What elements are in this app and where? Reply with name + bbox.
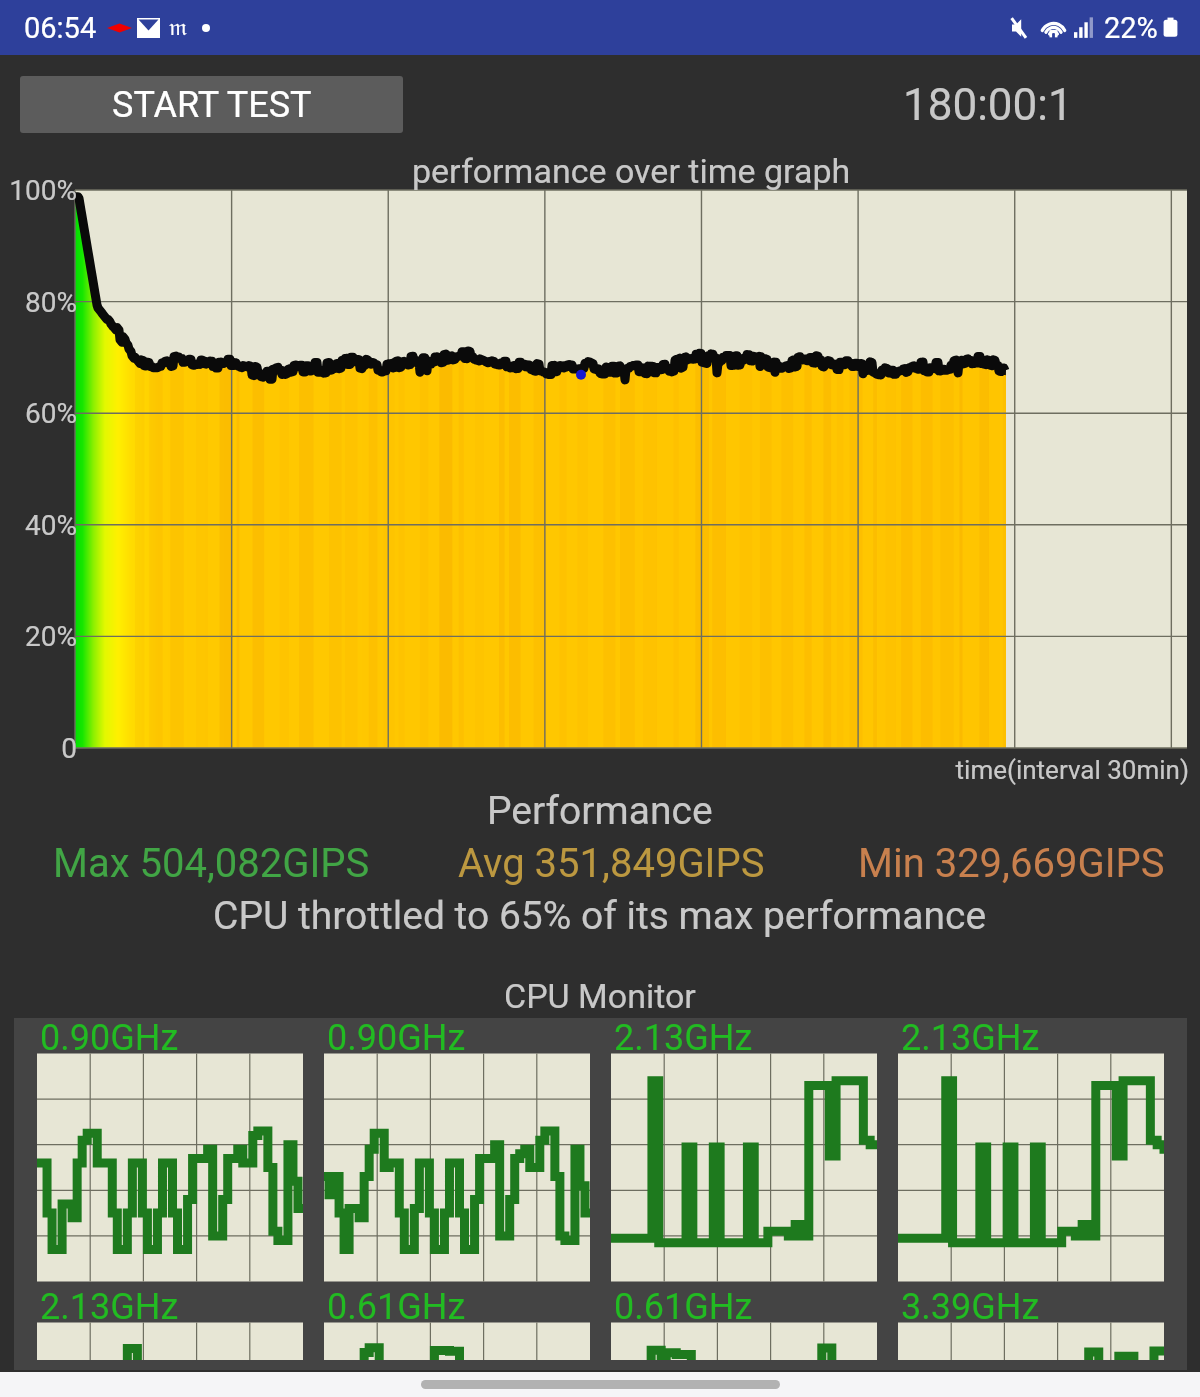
staticText: 40% <box>7 509 77 542</box>
staticText: START TEST <box>112 84 312 126</box>
staticText: 180:00:1 <box>903 79 1073 131</box>
button[interactable]: 0.90GHz <box>324 1017 590 1283</box>
staticText: 06:54 <box>24 11 97 45</box>
staticText: 3.39GHz <box>901 1286 1040 1328</box>
staticText: 0.61GHz <box>327 1286 466 1328</box>
button[interactable]: 3.39GHz <box>898 1286 1164 1397</box>
staticText: CPU throttled to 65% of its max performa… <box>213 893 987 939</box>
button[interactable]: 2.13GHz <box>611 1017 877 1283</box>
staticText: performance over time graph <box>412 151 851 191</box>
staticText: 2.13GHz <box>614 1017 753 1059</box>
staticText: 2.13GHz <box>901 1017 1040 1059</box>
button[interactable]: 2.13GHz <box>898 1017 1164 1283</box>
staticText: Min 329,669GIPS <box>858 840 1165 887</box>
staticText: 0.61GHz <box>614 1286 753 1328</box>
other: Battery 22 percent <box>1163 15 1178 41</box>
button[interactable]: 2.13GHz <box>37 1286 303 1397</box>
staticText: time(interval 30min) <box>780 755 1189 785</box>
other: Silent mode <box>1010 15 1030 41</box>
staticText: Avg 351,849GIPS <box>458 840 765 887</box>
staticText: 2.13GHz <box>40 1286 179 1328</box>
staticText: 0.90GHz <box>327 1017 466 1059</box>
staticText: Performance <box>487 788 713 834</box>
other: Wi-Fi <box>1040 15 1067 41</box>
button[interactable]: START TEST <box>20 76 403 133</box>
button[interactable]: 0.61GHz <box>611 1286 877 1397</box>
button[interactable]: 0.61GHz <box>324 1286 590 1397</box>
staticText: CPU Monitor <box>504 976 696 1016</box>
staticText: 0.90GHz <box>40 1017 179 1059</box>
staticText: 100% <box>7 174 77 207</box>
staticText: 80% <box>7 286 77 319</box>
staticText: 𝔪 <box>169 16 188 40</box>
staticText: 60% <box>7 397 77 430</box>
staticText: Max 504,082GIPS <box>53 840 370 887</box>
staticText: 0 <box>7 732 77 765</box>
staticText: 22% <box>1104 11 1158 45</box>
button[interactable]: 0.90GHz <box>37 1017 303 1283</box>
other: Mobile signal <box>1074 15 1095 41</box>
staticText: 20% <box>7 620 77 653</box>
